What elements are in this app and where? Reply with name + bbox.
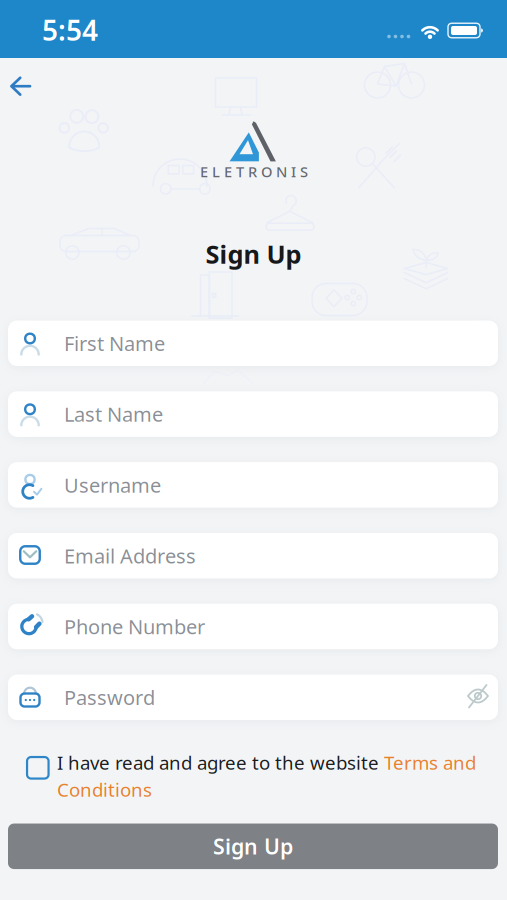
staticText: Terms and [384, 750, 476, 775]
staticText: 5:54 [42, 11, 98, 49]
staticText: Username [64, 472, 161, 498]
staticText: I have read and agree to the website [57, 750, 384, 775]
button[interactable]: Username [8, 462, 498, 508]
button[interactable]: Agree to terms [23, 753, 53, 783]
staticText: Email Address [64, 542, 196, 569]
button[interactable]: Password [8, 674, 498, 720]
staticText: Password [64, 684, 155, 711]
staticText: Sign Up [205, 237, 301, 271]
staticText: Sign Up [213, 832, 293, 860]
button[interactable]: Show password [458, 676, 498, 716]
button[interactable]: Sign Up [8, 823, 498, 869]
button[interactable]: Phone Number [8, 604, 498, 649]
staticText: Last Name [64, 401, 163, 427]
button[interactable]: I have read and agree to the website [57, 750, 503, 802]
button[interactable]: Last Name [8, 391, 498, 437]
staticText: First Name [64, 330, 165, 357]
button[interactable]: Back [0, 66, 40, 106]
button[interactable]: First Name [8, 321, 498, 366]
staticText: E L E T R O N I S [200, 162, 308, 181]
button[interactable]: Email Address [8, 533, 498, 578]
staticText: Phone Number [64, 613, 205, 640]
staticText: Conditions [57, 777, 152, 802]
